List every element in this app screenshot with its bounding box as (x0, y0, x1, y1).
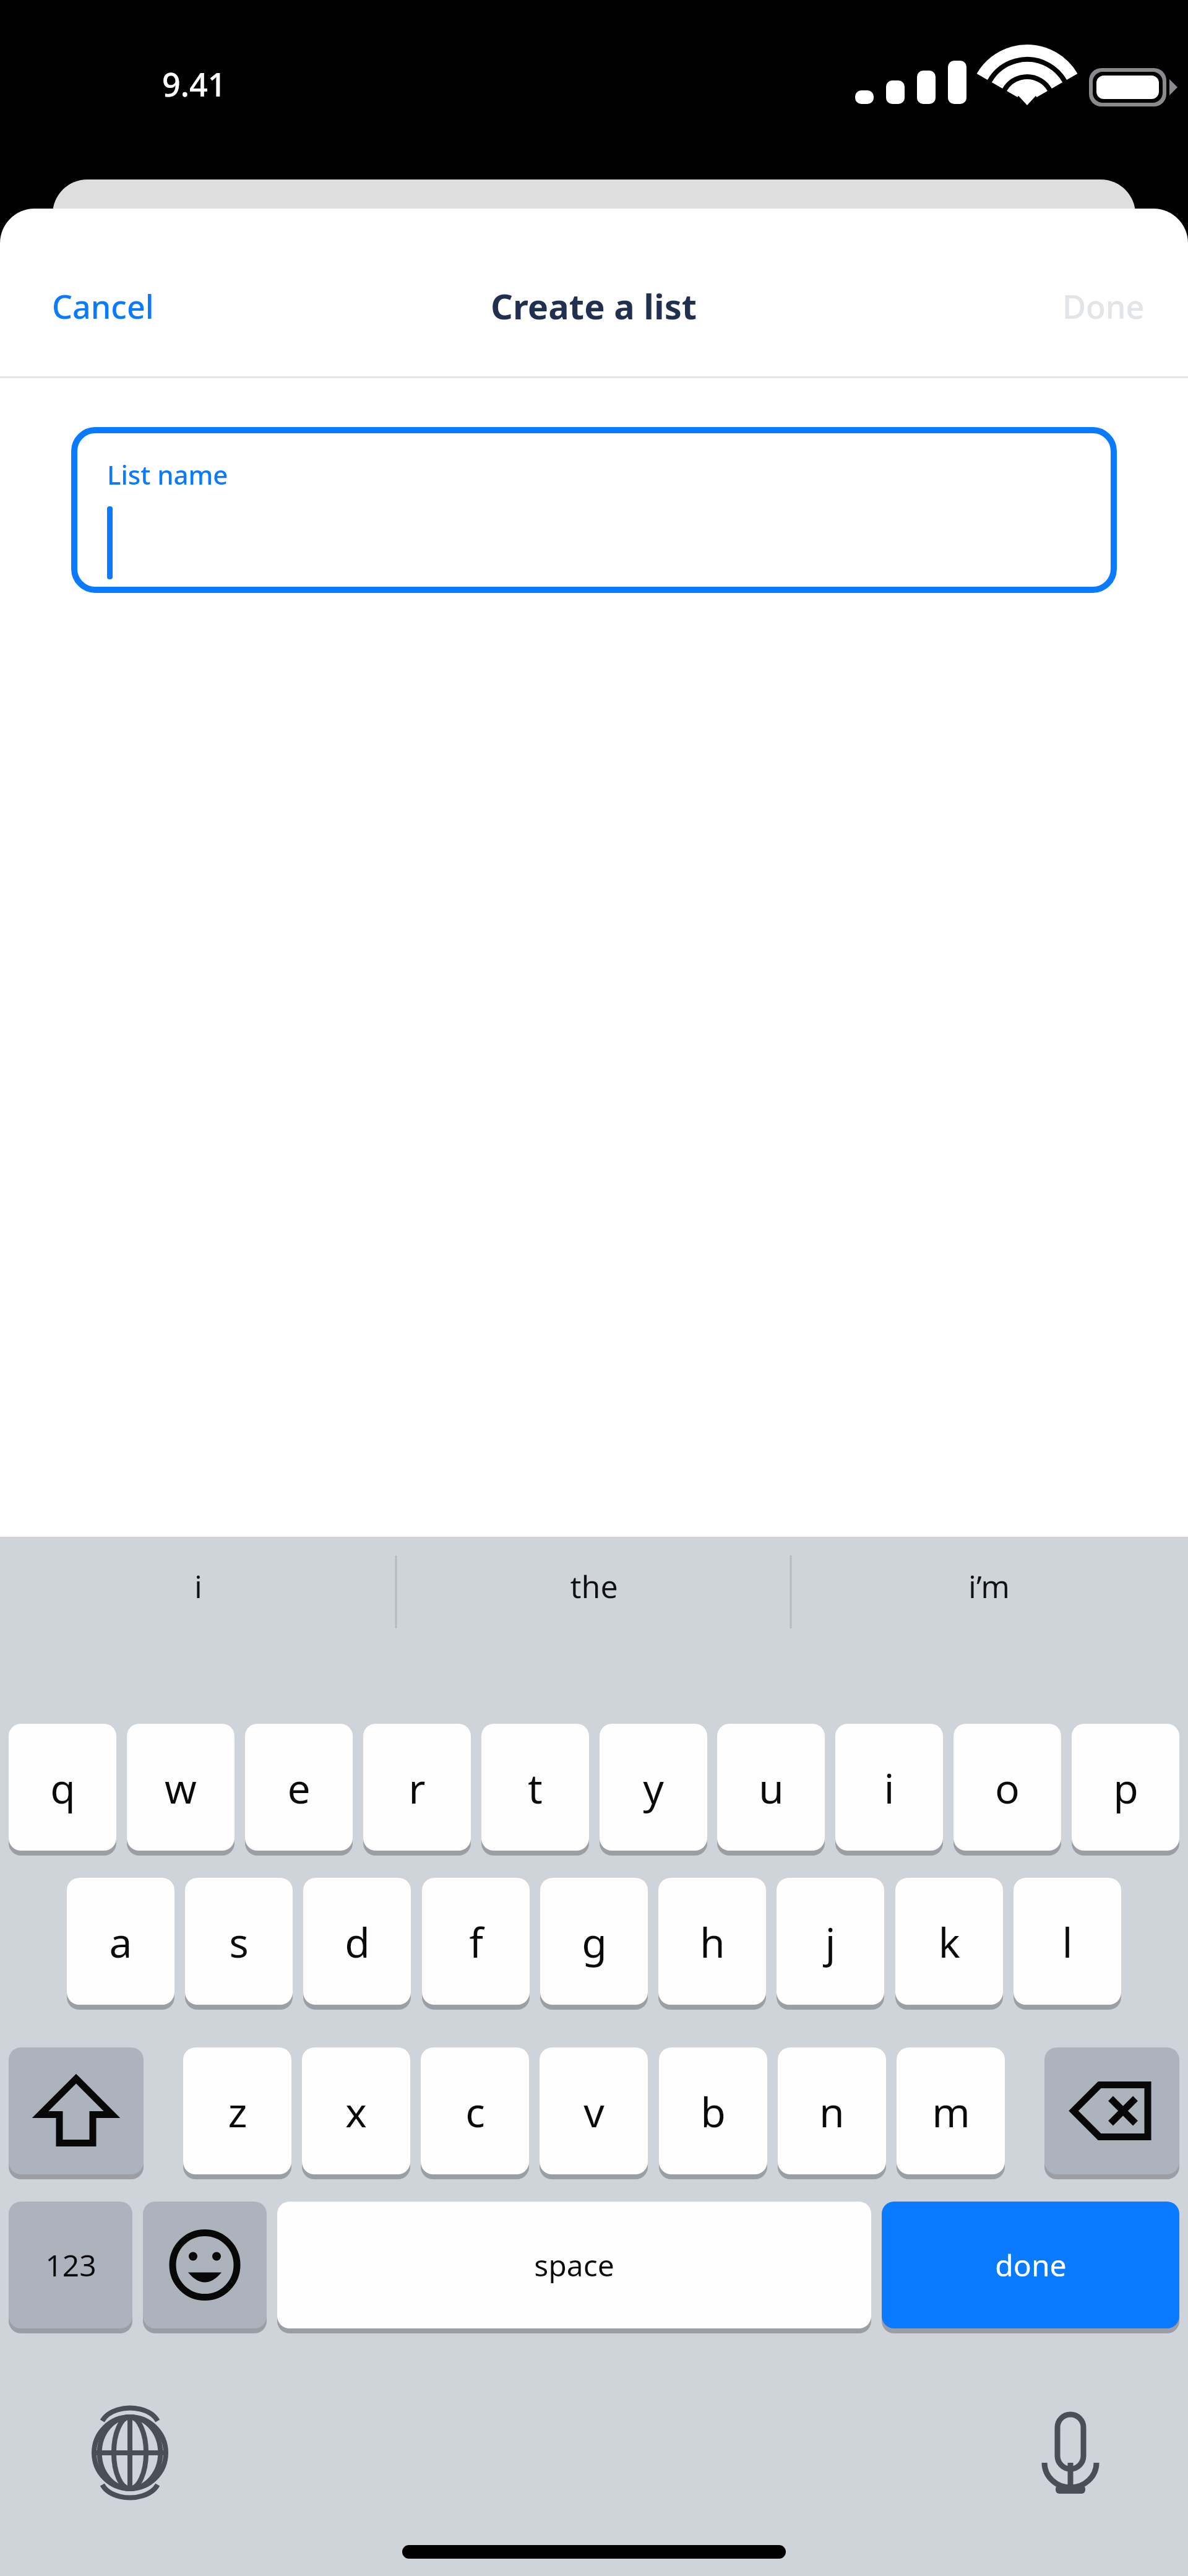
button[interactable]: c (421, 2047, 529, 2174)
button[interactable]: v (540, 2047, 648, 2174)
button[interactable]: d (303, 1878, 411, 2005)
staticText: i’m (968, 1565, 1010, 1607)
button[interactable]: the (470, 1537, 718, 1636)
button[interactable]: Done (1019, 270, 1188, 342)
button[interactable]: i (74, 1537, 322, 1636)
button[interactable]: p (1072, 1724, 1179, 1851)
button[interactable]: i’m (865, 1537, 1113, 1636)
staticText: d (345, 1914, 370, 1969)
button[interactable]: e (245, 1724, 353, 1851)
staticText: b (700, 2083, 726, 2139)
button[interactable]: f (422, 1878, 530, 2005)
button[interactable]: Emoji (143, 2202, 267, 2328)
staticText: Create a list (491, 282, 697, 329)
button[interactable]: r (363, 1724, 471, 1851)
button[interactable]: Shift (9, 2047, 144, 2174)
staticText: l (1062, 1914, 1073, 1969)
staticText: a (109, 1914, 132, 1969)
button[interactable]: Change keyboard language (80, 2403, 179, 2502)
button[interactable]: o (953, 1724, 1061, 1851)
staticText: i (194, 1565, 202, 1607)
staticText: h (700, 1914, 725, 1969)
staticText: c (465, 2083, 485, 2139)
staticText: z (228, 2083, 247, 2139)
button[interactable]: t (481, 1724, 589, 1851)
staticText: 123 (45, 2245, 97, 2285)
staticText: Done (1062, 284, 1145, 328)
staticText: m (932, 2083, 970, 2139)
button[interactable]: Cancel (0, 270, 206, 342)
button[interactable]: w (127, 1724, 235, 1851)
staticText: i (884, 1760, 895, 1815)
button[interactable]: n (778, 2047, 886, 2174)
staticText: e (287, 1760, 311, 1815)
button[interactable]: done (882, 2202, 1179, 2328)
button[interactable]: i (835, 1724, 943, 1851)
staticText: g (582, 1914, 607, 1969)
staticText: the (570, 1565, 618, 1607)
button[interactable]: q (9, 1724, 116, 1851)
staticText: List name (107, 457, 228, 492)
staticText: s (229, 1914, 249, 1969)
staticText: f (469, 1914, 483, 1969)
button[interactable]: k (895, 1878, 1003, 2005)
staticText: u (759, 1760, 784, 1815)
staticText: p (1113, 1760, 1138, 1815)
button[interactable]: h (658, 1878, 766, 2005)
staticText: t (528, 1760, 543, 1815)
staticText: 9.41 (162, 62, 226, 106)
button[interactable]: b (659, 2047, 767, 2174)
staticText: r (408, 1760, 426, 1815)
staticText: Cancel (52, 284, 154, 328)
staticText: v (583, 2083, 605, 2139)
staticText: y (643, 1760, 664, 1815)
button[interactable]: y (600, 1724, 707, 1851)
button[interactable]: Backspace (1044, 2047, 1179, 2174)
staticText: w (165, 1760, 197, 1815)
button[interactable]: l (1014, 1878, 1121, 2005)
staticText: x (345, 2083, 367, 2139)
staticText: o (995, 1760, 1020, 1815)
button[interactable]: a (67, 1878, 174, 2005)
staticText: j (825, 1914, 836, 1969)
button[interactable]: z (183, 2047, 291, 2174)
button[interactable]: s (185, 1878, 293, 2005)
button[interactable]: Dictate (1021, 2403, 1120, 2502)
staticText: k (938, 1914, 960, 1969)
button[interactable]: space (277, 2202, 871, 2328)
staticText: space (534, 2245, 614, 2285)
button[interactable]: m (897, 2047, 1005, 2174)
staticText: q (50, 1760, 75, 1815)
button[interactable]: 123 (9, 2202, 132, 2328)
button[interactable]: g (540, 1878, 648, 2005)
staticText: n (819, 2083, 845, 2139)
button[interactable]: List name (71, 427, 1117, 593)
button[interactable]: x (302, 2047, 410, 2174)
button[interactable]: j (777, 1878, 884, 2005)
button[interactable]: u (717, 1724, 825, 1851)
staticText: done (995, 2245, 1067, 2285)
